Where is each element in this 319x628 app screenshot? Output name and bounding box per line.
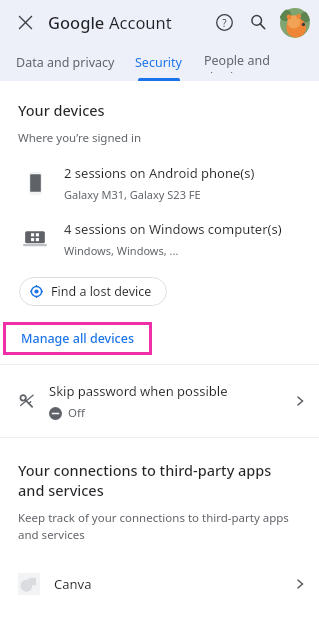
button[interactable]: 2 sessions on Android phone(s) [0, 164, 319, 202]
staticText: Your devices [18, 100, 105, 120]
button[interactable]: Help [209, 7, 239, 37]
staticText: Security [135, 54, 182, 71]
staticText: Account [109, 11, 172, 33]
button[interactable]: Manage all devices [3, 322, 152, 355]
staticText: Galaxy M31, Galaxy S23 FE [64, 187, 201, 202]
button[interactable]: Skip password when possible [0, 365, 319, 437]
staticText: Manage all devices [21, 330, 134, 347]
staticText: Canva [54, 575, 293, 593]
button[interactable]: Find a lost device [19, 277, 167, 306]
staticText: Google [48, 11, 105, 33]
staticText: 4 sessions on Windows computer(s) [64, 220, 282, 238]
button[interactable]: Data and privacy [10, 46, 121, 79]
staticText: Windows, Windows, ... [64, 243, 179, 258]
button[interactable]: People and sharing [198, 44, 319, 81]
staticText: 2 sessions on Android phone(s) [64, 164, 255, 182]
staticText: Find a lost device [51, 283, 152, 300]
button[interactable]: 4 sessions on Windows computer(s) [0, 220, 319, 258]
staticText: Data and privacy [16, 54, 115, 71]
button[interactable]: Security [129, 46, 188, 79]
button[interactable]: Account profile [279, 7, 310, 38]
button[interactable]: Search [243, 7, 273, 37]
staticText: Your connections to third-party apps and… [18, 460, 297, 500]
staticText: People and sharing [204, 52, 313, 73]
staticText: Off [68, 405, 85, 421]
button[interactable]: Canva [0, 559, 319, 609]
staticText: ? [222, 16, 227, 30]
staticText: Keep track of your connections to third-… [18, 510, 297, 543]
staticText: Where you’re signed in [18, 130, 142, 146]
staticText: Skip password when possible [49, 382, 228, 400]
button[interactable]: Close [10, 7, 40, 37]
